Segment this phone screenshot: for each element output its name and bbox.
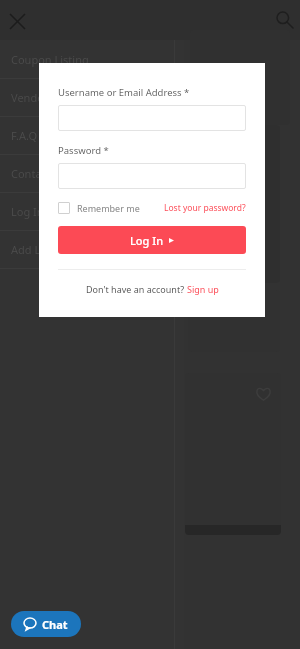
- staticText: Sign up: [187, 283, 219, 295]
- staticText: Log In: [11, 204, 44, 219]
- staticText: Username or Email Address *: [58, 86, 190, 99]
- staticText: Remember me: [77, 202, 140, 214]
- staticText: Coupon Listing: [11, 52, 89, 67]
- staticText: Contact: [11, 166, 51, 181]
- button[interactable]: Password: [58, 163, 246, 189]
- staticText: Vendors: [11, 90, 54, 105]
- button[interactable]: F.A.Q: [0, 116, 175, 154]
- staticText: Add Listing: [11, 242, 69, 257]
- staticText: Chat: [42, 617, 68, 632]
- staticText: Log In: [130, 233, 164, 248]
- button[interactable]: Log In: [0, 192, 175, 230]
- button[interactable]: Vendors: [0, 78, 175, 116]
- staticText: F.A.Q: [11, 128, 38, 143]
- button[interactable]: Username or Email Address: [58, 105, 246, 131]
- button[interactable]: Sign up: [187, 283, 219, 295]
- button[interactable]: Log In: [58, 226, 246, 254]
- button[interactable]: Chat: [11, 611, 81, 637]
- button[interactable]: Lost your password?: [164, 202, 246, 214]
- staticText: Lost your password?: [164, 202, 246, 214]
- staticText: Don't have an account?: [86, 283, 187, 295]
- button[interactable]: Contact: [0, 154, 175, 192]
- button[interactable]: Add Listing: [0, 230, 175, 268]
- staticText: Password *: [58, 144, 109, 157]
- button[interactable]: Remember me: [58, 202, 140, 214]
- button[interactable]: Close: [4, 8, 30, 34]
- button[interactable]: Coupon Listing: [0, 40, 175, 78]
- button[interactable]: Search: [272, 7, 296, 31]
